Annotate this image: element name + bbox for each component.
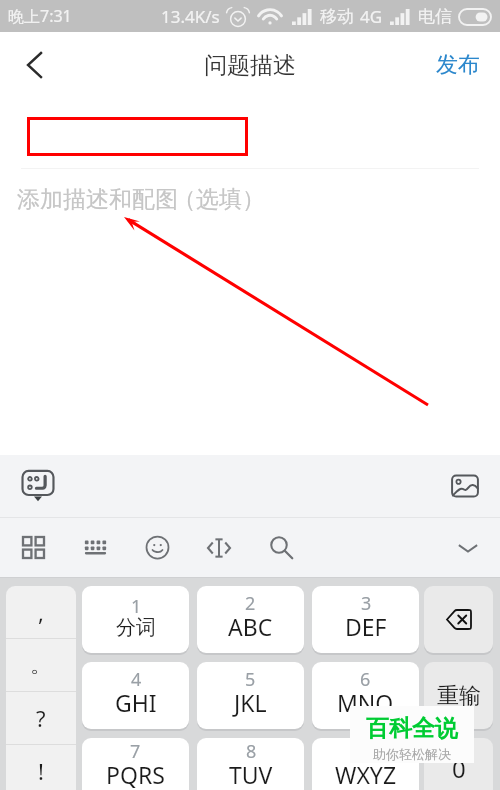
staticText: 5 — [245, 667, 256, 692]
staticText: , — [38, 597, 44, 627]
staticText: ABC — [228, 611, 273, 642]
staticText: 重输 — [437, 682, 481, 710]
staticText: 0 — [452, 752, 466, 785]
staticText: 百科全说 — [366, 714, 458, 743]
button[interactable]: Emoji — [126, 518, 188, 577]
button[interactable]: 6 — [312, 662, 419, 729]
staticText: 电信 — [418, 6, 452, 27]
button[interactable]: ! — [6, 745, 76, 790]
button[interactable]: ? — [6, 692, 76, 744]
staticText: PQRS — [106, 759, 165, 790]
button[interactable]: Input method — [17, 465, 59, 507]
button[interactable]: 9 — [312, 738, 419, 790]
staticText: 发布 — [436, 51, 480, 79]
staticText: 移动 — [320, 6, 354, 27]
button[interactable]: 4 — [82, 662, 189, 729]
button[interactable]: 8 — [197, 738, 304, 790]
staticText: TUV — [229, 759, 273, 790]
staticText: WXYZ — [335, 759, 397, 790]
button[interactable]: 。 — [6, 639, 76, 691]
button[interactable]: 重输 — [424, 662, 493, 729]
staticText: 。 — [30, 651, 52, 679]
button[interactable]: Insert image — [444, 465, 486, 507]
button[interactable]: Symbols — [2, 518, 64, 577]
staticText: 晚上7:31 — [8, 5, 72, 27]
staticText: ! — [38, 756, 44, 786]
button[interactable]: Move cursor — [188, 518, 250, 577]
button[interactable]: Keyboard layout — [64, 518, 126, 577]
staticText: 助你轻松解决 — [373, 746, 451, 762]
staticText: 3 — [361, 591, 372, 616]
staticText: 7 — [130, 739, 141, 764]
staticText: （选填） — [173, 185, 265, 214]
button[interactable]: 1 — [82, 586, 189, 653]
button[interactable]: , — [6, 586, 76, 638]
staticText: ? — [36, 703, 46, 733]
staticText: 1 — [131, 594, 142, 619]
button[interactable]: 0 — [424, 738, 493, 790]
button[interactable]: Hide keyboard — [448, 528, 488, 568]
staticText: GHI — [115, 687, 157, 718]
staticText: 4G — [360, 5, 383, 28]
staticText: DEF — [345, 611, 387, 642]
staticText: 分词 — [116, 615, 156, 640]
staticText: 问题描述 — [204, 51, 296, 80]
staticText: 2 — [245, 591, 256, 616]
button[interactable]: Backspace — [424, 586, 493, 653]
button[interactable]: 2 — [197, 586, 304, 653]
staticText: MNO — [337, 687, 394, 718]
staticText: 4 — [131, 667, 142, 692]
staticText: 6 — [360, 667, 371, 692]
button[interactable]: 5 — [197, 662, 304, 729]
button[interactable]: Search — [250, 518, 312, 577]
staticText: 添加描述和配图 — [17, 185, 178, 214]
button[interactable]: 发布 — [416, 39, 500, 91]
staticText: JKL — [234, 687, 267, 718]
button[interactable]: 3 — [312, 586, 419, 653]
staticText: 8 — [246, 739, 257, 764]
button[interactable]: 7 — [82, 738, 189, 790]
staticText: 13.4K/s — [161, 5, 220, 28]
button[interactable]: Back — [9, 41, 57, 89]
